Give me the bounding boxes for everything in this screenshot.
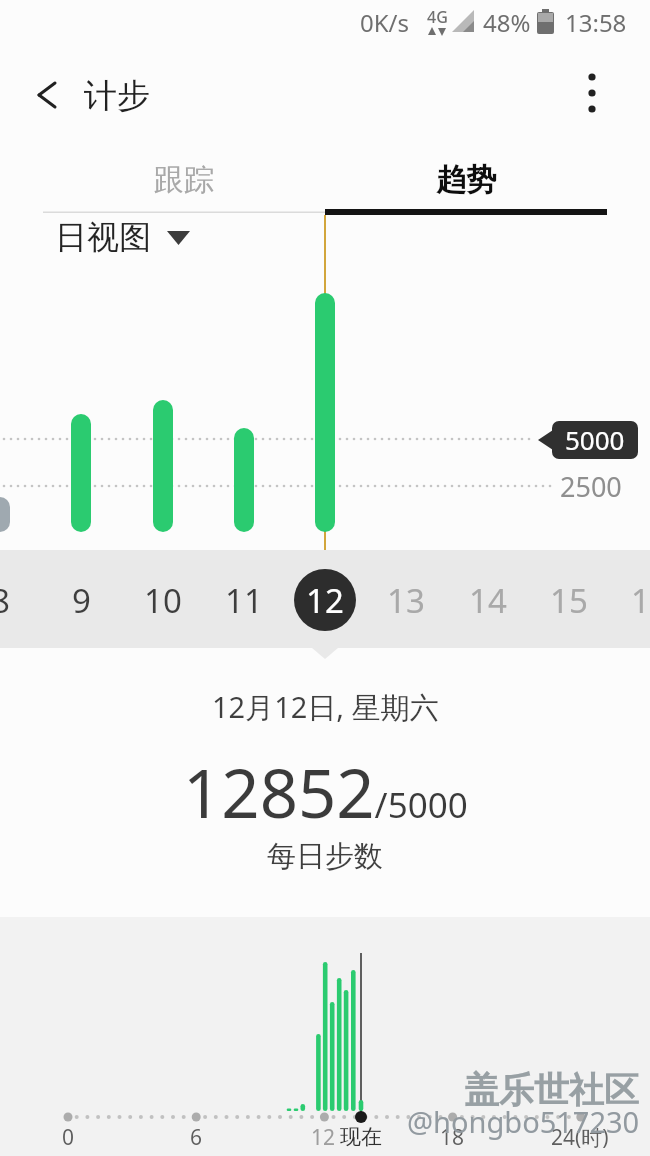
staticText: 16 [631, 578, 650, 623]
staticText: 12 [311, 1123, 336, 1152]
staticText: 跟踪 [154, 161, 214, 199]
staticText: 13 [387, 578, 425, 623]
staticText: 0 [62, 1123, 75, 1152]
staticText: 48% [483, 6, 531, 39]
staticText: 4G [427, 6, 448, 28]
staticText: 8 [0, 578, 10, 623]
button[interactable] [41, 550, 122, 648]
button[interactable] [45, 218, 200, 256]
staticText: 24(时) [551, 1123, 609, 1152]
button[interactable] [20, 70, 70, 120]
button[interactable] [567, 68, 623, 124]
staticText: 15 [550, 578, 588, 623]
button[interactable] [366, 550, 447, 648]
button[interactable] [284, 550, 365, 648]
button[interactable] [203, 550, 284, 648]
button[interactable] [43, 148, 325, 214]
staticText: 0K/s [360, 6, 410, 39]
staticText: 6 [190, 1123, 203, 1152]
staticText: 每日步数 [267, 838, 383, 875]
staticText: @hongbo517230 [407, 1102, 640, 1141]
button[interactable] [122, 550, 203, 648]
staticText: 现在 [340, 1124, 382, 1150]
staticText: 11 [225, 578, 263, 623]
button[interactable] [609, 550, 650, 648]
button[interactable] [0, 550, 40, 648]
staticText: 计步 [84, 75, 150, 117]
staticText: 12月12日, 星期六 [212, 687, 439, 727]
staticText: 12852/5000 [183, 746, 468, 837]
button[interactable] [325, 148, 607, 214]
button[interactable] [447, 550, 528, 648]
staticText: 2500 [560, 468, 622, 505]
staticText: 13:58 [565, 6, 627, 39]
staticText: 日视图 [55, 217, 151, 257]
button[interactable] [528, 550, 609, 648]
staticText: 10 [144, 578, 182, 623]
staticText: 18 [440, 1123, 465, 1152]
staticText: 趋势 [436, 161, 496, 199]
staticText: 盖乐世社区 [464, 1068, 639, 1112]
staticText: 12 [306, 578, 344, 623]
staticText: 14 [469, 578, 507, 623]
staticText: 9 [72, 578, 91, 623]
staticText: 5000 [565, 422, 625, 457]
